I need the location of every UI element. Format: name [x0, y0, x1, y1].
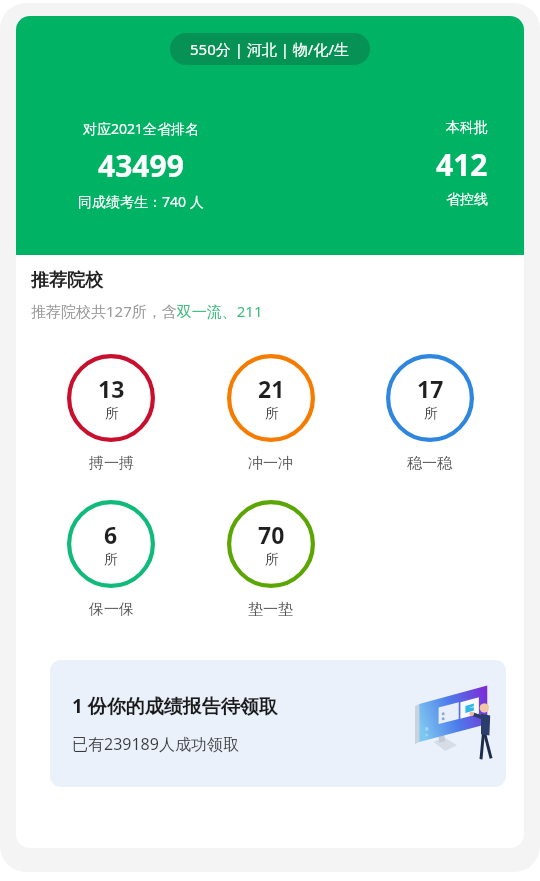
other: 成绩报告插图 [410, 683, 494, 765]
staticText: 本科批 [446, 119, 488, 137]
staticText: 43499 [98, 145, 184, 186]
button[interactable]: 21 [191, 354, 350, 473]
staticText: 所 [265, 405, 279, 423]
staticText: 已有239189人成功领取 [72, 733, 239, 755]
button[interactable]: 70 [191, 500, 350, 619]
staticText: 稳一稳 [407, 454, 452, 473]
staticText: 冲一冲 [248, 454, 293, 473]
staticText: 所 [104, 551, 118, 569]
staticText: 垫一垫 [248, 600, 293, 619]
button[interactable]: 550分 | 河北 | 物/化/生 [170, 33, 370, 65]
staticText: 推荐院校 [31, 269, 103, 292]
staticText: 13 [98, 373, 125, 404]
staticText: 保一保 [89, 600, 134, 619]
staticText: 同成绩考生：740 人 [78, 192, 204, 211]
button[interactable]: 1 份你的成绩报告待领取 [50, 660, 506, 787]
button[interactable]: 17 [350, 354, 509, 473]
staticText: 1 份你的成绩报告待领取 [72, 693, 278, 719]
staticText: 17 [417, 373, 444, 404]
button[interactable]: 6 [31, 500, 191, 619]
staticText: 推荐院校共127所，含双一流、211 [31, 301, 263, 321]
staticText: 412 [436, 144, 488, 185]
staticText: 搏一搏 [89, 454, 134, 473]
staticText: 6 [104, 519, 118, 550]
staticText: 21 [258, 373, 285, 404]
staticText: 对应2021全省排名 [83, 119, 200, 138]
staticText: 70 [258, 519, 285, 550]
staticText: 省控线 [446, 191, 488, 209]
staticText: 所 [105, 405, 119, 423]
staticText: 550分 | 河北 | 物/化/生 [190, 39, 350, 59]
staticText: 所 [424, 405, 438, 423]
button[interactable]: 13 [31, 354, 191, 473]
staticText: 所 [265, 551, 279, 569]
